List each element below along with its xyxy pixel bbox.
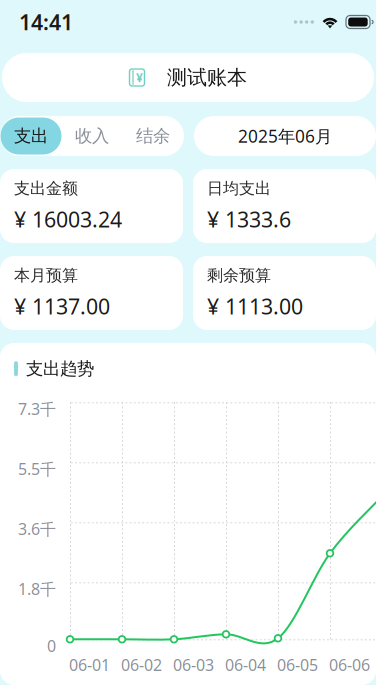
staticText: ¥ 1113.00 <box>207 292 303 320</box>
staticText: 06-02 <box>121 654 162 675</box>
staticText: 06-01 <box>69 654 110 675</box>
staticText: 06-06 <box>329 654 370 675</box>
button[interactable]: ¥ <box>2 53 374 102</box>
staticText: 日均支出 <box>207 178 271 198</box>
staticText: 06-05 <box>277 654 318 675</box>
staticText: ¥ 1137.00 <box>14 292 110 320</box>
staticText: 支出 <box>14 125 48 147</box>
staticText: 结余 <box>136 125 170 147</box>
staticText: 06-04 <box>225 654 266 675</box>
staticText: 2025年06月 <box>238 124 332 147</box>
staticText: 1.8千 <box>18 578 56 599</box>
staticText: ¥ <box>136 69 143 85</box>
staticText: ¥ 16003.24 <box>14 205 122 233</box>
button[interactable]: 收入 <box>61 117 122 154</box>
staticText: 收入 <box>75 125 109 147</box>
staticText: 7.3千 <box>18 398 56 419</box>
staticText: 本月预算 <box>14 265 78 285</box>
staticText: 14:41 <box>19 8 73 36</box>
staticText: ¥ 1333.6 <box>207 205 291 233</box>
staticText: 3.6千 <box>18 518 56 539</box>
staticText: 测试账本 <box>167 65 247 90</box>
staticText: 5.5千 <box>18 458 56 479</box>
button[interactable]: 支出 <box>0 117 61 154</box>
staticText: 06-03 <box>173 654 214 675</box>
staticText: 剩余预算 <box>207 265 271 285</box>
button[interactable]: 结余 <box>122 117 183 154</box>
button[interactable]: 2025年06月 <box>194 116 376 156</box>
staticText: 支出金额 <box>14 178 78 198</box>
staticText: 0 <box>47 635 56 656</box>
staticText: 支出趋势 <box>26 358 94 379</box>
